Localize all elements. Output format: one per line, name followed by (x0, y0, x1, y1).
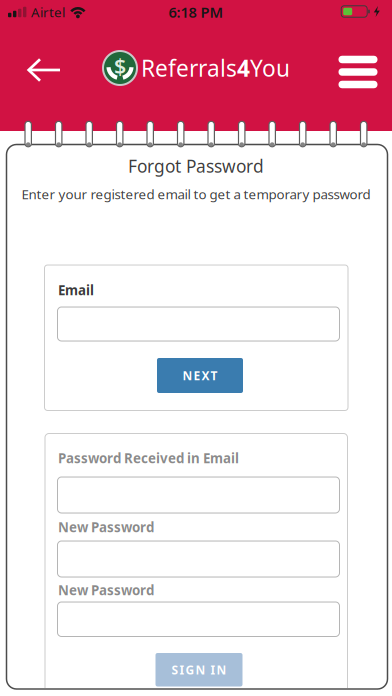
staticText: $ (114, 52, 126, 80)
button[interactable]: SIGN IN (155, 653, 242, 686)
button[interactable] (57, 477, 339, 513)
staticText: 4 (237, 53, 250, 83)
button[interactable] (57, 541, 339, 577)
button[interactable] (338, 56, 377, 88)
button[interactable] (57, 307, 339, 341)
button[interactable] (26, 57, 61, 82)
staticText: Password Received in Email (58, 449, 239, 467)
button[interactable]: NEXT (157, 358, 243, 393)
staticText: 6:18 PM (168, 2, 223, 22)
staticText: Forgot Password (128, 154, 264, 177)
button[interactable] (57, 602, 339, 636)
staticText: Airtel (31, 3, 65, 21)
staticText: SIGN IN (171, 662, 226, 678)
staticText: Email (58, 281, 94, 299)
staticText: New Password (58, 518, 154, 536)
staticText: Referrals (141, 53, 237, 83)
staticText: You (250, 53, 290, 83)
staticText: NEXT (182, 367, 217, 383)
staticText: Enter your registered email to get a tem… (21, 185, 370, 203)
staticText: New Password (58, 581, 154, 599)
